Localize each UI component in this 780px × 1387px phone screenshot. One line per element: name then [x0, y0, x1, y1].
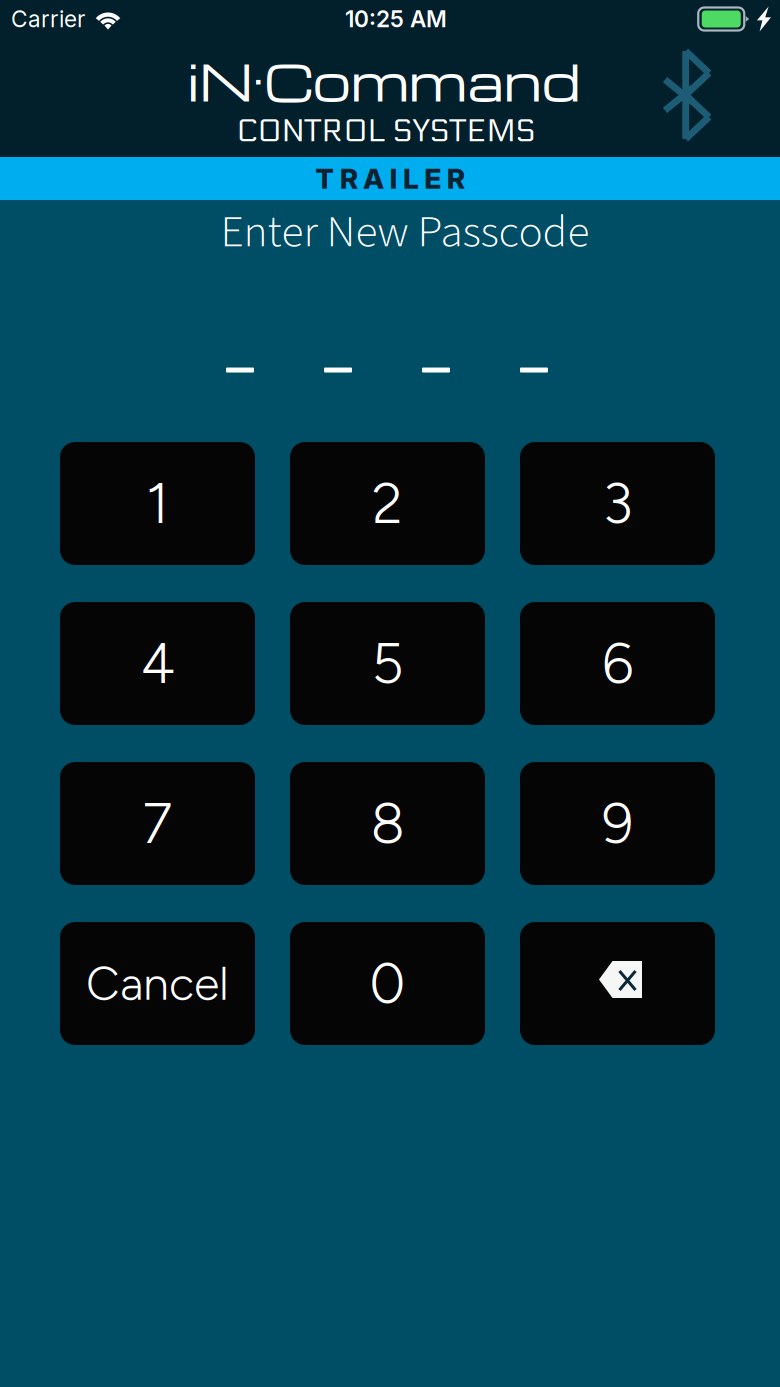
staticText: CONTROL SYSTEMS [236, 112, 535, 150]
staticText: 3 [602, 470, 632, 537]
button[interactable]: 4 [60, 602, 255, 725]
staticText: T [315, 162, 334, 195]
staticText: L [403, 162, 419, 195]
button[interactable]: 1 [60, 442, 255, 565]
button[interactable]: 6 [520, 602, 715, 725]
staticText: E [424, 162, 441, 195]
staticText: Carrier [11, 5, 85, 33]
staticText: 2 [372, 470, 403, 537]
staticText: 5 [371, 630, 403, 697]
button[interactable]: 0 [290, 922, 485, 1045]
staticText: 1 [146, 470, 169, 537]
staticText: 4 [140, 630, 174, 697]
staticText: 0 [369, 950, 405, 1017]
button[interactable]: 3 [520, 442, 715, 565]
staticText: 6 [602, 630, 633, 697]
staticText: Cancel [86, 955, 229, 1011]
staticText: R [340, 162, 358, 195]
button[interactable]: 5 [290, 602, 485, 725]
staticText: 7 [142, 790, 172, 857]
staticText: A [363, 162, 384, 195]
staticText: R [447, 162, 465, 195]
staticText: I [389, 162, 397, 195]
staticText: 10:25 AM [345, 5, 447, 33]
staticText: 9 [602, 790, 633, 857]
staticText: 8 [370, 790, 404, 857]
button[interactable]: 7 [60, 762, 255, 885]
button[interactable]: Delete [520, 922, 715, 1045]
staticText: iN·Command [188, 46, 580, 114]
button[interactable]: Cancel [60, 922, 255, 1045]
button[interactable]: 8 [290, 762, 485, 885]
button[interactable]: 2 [290, 442, 485, 565]
button[interactable]: 9 [520, 762, 715, 885]
staticText: Enter New Passcode [220, 200, 589, 264]
